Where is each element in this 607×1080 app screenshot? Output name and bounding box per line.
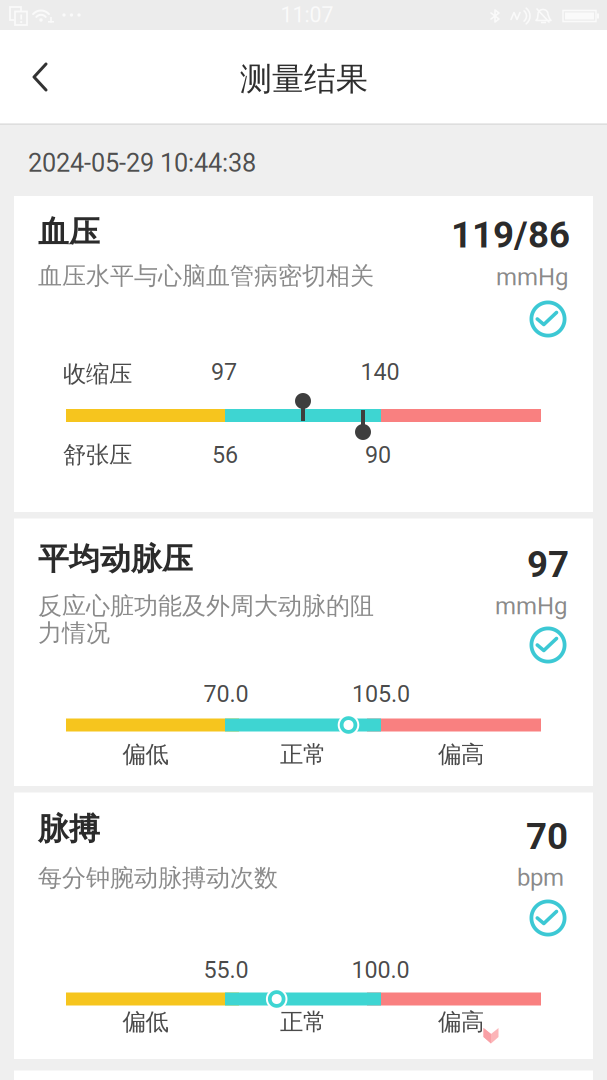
staticText: 偏高 (438, 740, 484, 769)
staticText: 每分钟腕动脉搏动次数 (38, 863, 278, 893)
staticText: 55.0 (203, 956, 248, 984)
staticText: 舒张压 (63, 440, 132, 470)
staticText: 100.0 (351, 956, 409, 984)
staticText: 测量结果 (240, 59, 368, 99)
staticText: 血压水平与心脑血管病密切相关 (38, 261, 374, 291)
staticText: 平均动脉压 (38, 540, 193, 578)
staticText: 140 (360, 358, 399, 386)
staticText: 偏低 (122, 740, 168, 769)
staticText: 力情况 (38, 618, 110, 648)
staticText: 56 (212, 441, 238, 469)
staticText: 2024-05-29 10:44:38 (28, 148, 256, 178)
staticText: 收缩压 (63, 359, 132, 389)
staticText: 70.0 (203, 680, 248, 708)
staticText: 119/86 (451, 213, 570, 256)
staticText: 脉搏 (38, 810, 100, 848)
staticText: mmHg (496, 263, 568, 291)
staticText: 90 (365, 441, 391, 469)
staticText: 105.0 (352, 680, 410, 708)
staticText: 正常 (280, 1007, 326, 1037)
staticText: 97 (527, 543, 569, 586)
staticText: 70 (526, 815, 568, 858)
staticText: 偏低 (122, 1007, 168, 1037)
staticText: bpm (517, 863, 564, 891)
staticText: 反应心脏功能及外周大动脉的阻 (38, 591, 374, 621)
staticText: 97 (211, 358, 237, 386)
staticText: mmHg (495, 592, 567, 620)
staticText: 正常 (280, 740, 326, 769)
staticText: 偏高 (438, 1007, 484, 1037)
staticText: 11:07 (280, 2, 333, 27)
button[interactable]: Back (16, 53, 64, 101)
staticText: 血压 (38, 213, 100, 251)
